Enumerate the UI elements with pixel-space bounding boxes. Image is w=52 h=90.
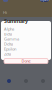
staticText: Done: [21, 58, 30, 64]
staticText: Beta: [4, 31, 12, 37]
button[interactable]: Gamma: [4, 37, 48, 40]
staticText: Delta: [4, 41, 13, 47]
button[interactable]: Open: [40, 0, 49, 2]
button[interactable]: Delta: [4, 42, 48, 45]
button[interactable]: Beta: [4, 32, 48, 35]
button[interactable]: Epsilon: [4, 47, 48, 50]
staticText: Open: [40, 0, 49, 2]
staticText: Gamma: [4, 36, 19, 42]
button[interactable]: Alpha: [4, 27, 48, 30]
staticText: Summary: [4, 17, 28, 25]
button[interactable]: Home: [0, 68, 17, 90]
button[interactable]: Profile: [3, 0, 8, 2]
staticText: Epsilon: [4, 46, 16, 52]
button[interactable]: Zeta: [4, 52, 48, 55]
button[interactable]: Done: [4, 58, 48, 63]
staticText: Hi: [3, 10, 7, 15]
staticText: Alpha: [4, 26, 14, 32]
staticText: Zeta: [4, 51, 11, 57]
